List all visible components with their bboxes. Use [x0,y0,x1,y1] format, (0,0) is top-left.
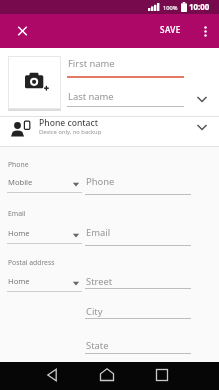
button[interactable] [40,364,64,388]
staticText: City [86,305,103,318]
button[interactable]: Phone contact [0,117,219,146]
button[interactable]: Email [85,223,195,241]
staticText: SAVE [160,24,181,35]
button[interactable]: Mobile [7,174,83,193]
button[interactable]: SAVE [154,19,190,43]
button[interactable] [190,115,214,137]
button[interactable] [198,17,214,45]
button[interactable] [190,87,214,109]
staticText: Device only, no backup [39,128,102,136]
staticText: Phone [8,160,29,169]
staticText: Phone contact [39,117,99,129]
button[interactable]: City [85,302,195,320]
button[interactable] [95,364,119,388]
staticText: Home [8,276,30,286]
button[interactable]: Home [7,273,83,292]
staticText: 10:00 [189,2,210,13]
staticText: Home [8,228,30,238]
button[interactable]: Last name [67,88,191,108]
button[interactable] [8,56,61,109]
staticText: First name [68,57,115,70]
staticText: Street [86,275,113,288]
staticText: Email [86,226,111,239]
button[interactable] [150,364,174,388]
button[interactable] [8,17,36,45]
staticText: Phone [86,175,115,188]
staticText: State [86,339,109,352]
button[interactable]: State [85,336,195,354]
staticText: Email [8,209,26,218]
button[interactable]: Street [85,272,195,290]
staticText: 100% [163,4,178,12]
button[interactable]: Phone [85,172,195,190]
staticText: Mobile [8,177,33,187]
button[interactable]: Home [7,225,83,244]
staticText: Postal address [8,258,55,267]
staticText: Last name [68,90,114,103]
button[interactable]: First name [67,55,191,79]
